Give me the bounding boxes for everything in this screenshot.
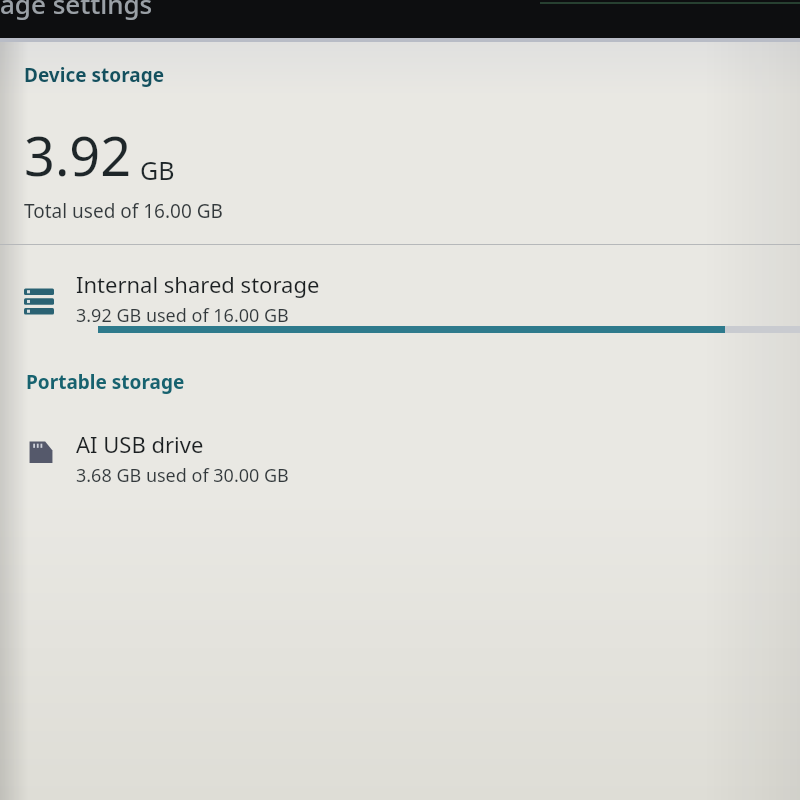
staticText: AI USB drive: [76, 429, 204, 459]
other: AI USB drive: [28, 439, 54, 465]
staticText: Internal shared storage: [76, 269, 320, 299]
staticText: age settings: [0, 0, 153, 21]
button[interactable]: AI USB drive: [0, 429, 800, 509]
staticText: 3.92 GB used of 16.00 GB: [76, 303, 289, 328]
staticText: Total used of 16.00 GB: [24, 198, 223, 224]
staticText: GB: [140, 153, 175, 187]
other: Internal shared storage: [24, 285, 54, 315]
staticText: 3.68 GB used of 30.00 GB: [76, 463, 289, 488]
staticText: 3.92: [24, 118, 132, 192]
staticText: Device storage: [24, 62, 164, 88]
button[interactable]: Internal shared storage: [0, 245, 800, 343]
staticText: Portable storage: [26, 369, 185, 395]
